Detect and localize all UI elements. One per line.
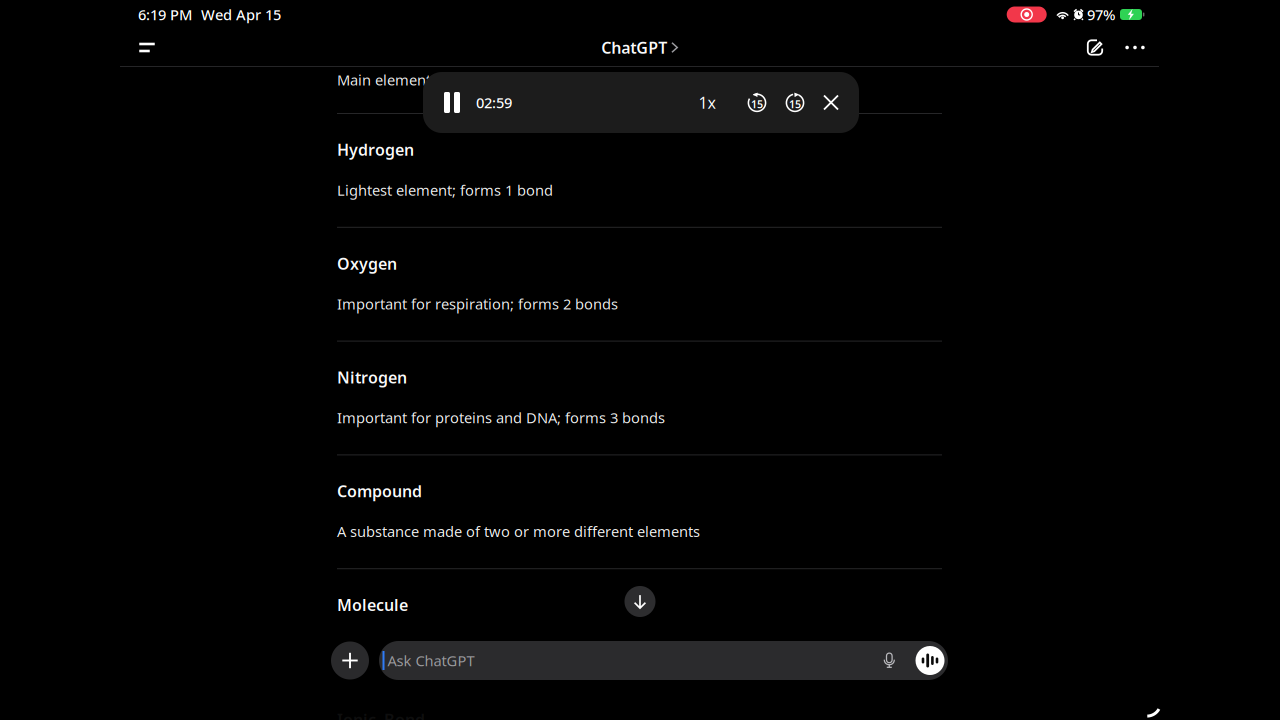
staticText: 97%: [1087, 5, 1115, 24]
button[interactable]: Ask ChatGPT: [382, 641, 880, 680]
staticText: 6:19 PM: [138, 5, 192, 24]
staticText: 15: [789, 97, 801, 111]
staticText: Hydrogen: [337, 139, 414, 160]
staticText: Lightest element; forms 1 bond: [337, 180, 553, 200]
button[interactable]: New chat: [1075, 29, 1115, 66]
staticText: Oxygen: [337, 253, 397, 274]
button[interactable]: Skip back 15 seconds: [745, 86, 769, 118]
staticText: Bond: [384, 709, 425, 720]
button[interactable]: More options: [1115, 29, 1155, 66]
staticText: 02:59: [476, 93, 512, 112]
button[interactable]: Dictate: [880, 641, 898, 680]
staticText: ChatGPT: [601, 37, 667, 58]
staticText: A substance made of two or more differen…: [337, 522, 700, 541]
staticText: 1x: [698, 92, 715, 113]
staticText: Wed Apr 15: [201, 5, 281, 24]
staticText: Ask ChatGPT: [387, 651, 474, 670]
button[interactable]: Voice mode: [915, 641, 944, 680]
button[interactable]: Scroll to bottom: [624, 586, 655, 617]
button[interactable]: Sidebar: [125, 29, 169, 66]
button[interactable]: Skip forward 15 seconds: [783, 86, 807, 118]
button[interactable]: Add attachment: [331, 641, 369, 679]
button[interactable]: Close player: [820, 86, 842, 118]
button[interactable]: Pause: [440, 86, 464, 118]
staticText: Important for respiration; forms 2 bonds: [337, 294, 618, 313]
staticText: Important for proteins and DNA; forms 3 …: [337, 408, 665, 427]
staticText: Molecule: [337, 594, 408, 615]
staticText: Nitrogen: [337, 367, 407, 388]
button[interactable]: Playback speed: [695, 86, 719, 118]
staticText: Main elements: [337, 70, 438, 89]
button[interactable]: ChatGPT: [601, 29, 678, 66]
staticText: Ionic: [337, 709, 376, 720]
staticText: Compound: [337, 480, 422, 502]
staticText: 15: [751, 97, 763, 111]
